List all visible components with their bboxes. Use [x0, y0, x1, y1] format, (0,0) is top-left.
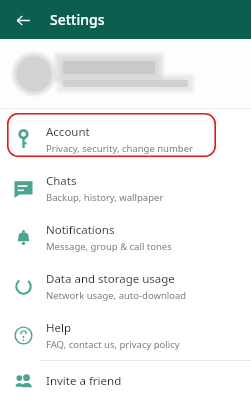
button[interactable]: Invite a friend: [0, 361, 251, 401]
staticText: FAQ, contact us, privacy policy: [46, 338, 180, 351]
staticText: Notifications: [46, 222, 115, 238]
staticText: Backup, history, wallpaper: [46, 191, 164, 204]
button[interactable]: Notifications: [0, 213, 251, 262]
staticText: Data and storage usage: [46, 271, 175, 287]
staticText: Invite a friend: [46, 373, 122, 389]
staticText: Message, group & call tones: [46, 240, 172, 253]
staticText: Network usage, auto-download: [46, 289, 187, 302]
button[interactable]: Chats: [0, 164, 251, 213]
button[interactable]: Back: [8, 5, 38, 35]
staticText: Account: [46, 124, 90, 140]
staticText: Privacy, security, change number: [46, 142, 193, 155]
staticText: Chats: [46, 173, 77, 189]
button[interactable]: [0, 39, 251, 108]
button[interactable]: Help: [0, 311, 251, 360]
staticText: Help: [46, 320, 72, 336]
button[interactable]: Data and storage usage: [0, 262, 251, 311]
button[interactable]: Account: [0, 115, 251, 164]
staticText: Settings: [50, 10, 105, 29]
